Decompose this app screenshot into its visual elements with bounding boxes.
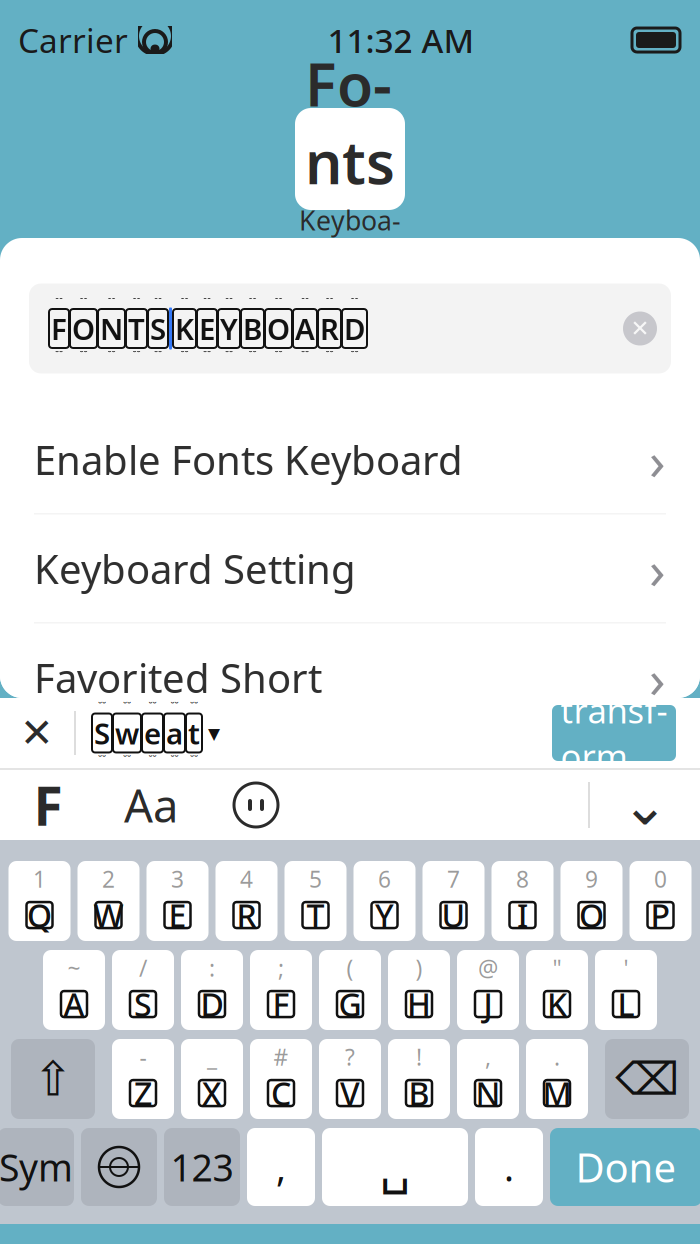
staticText: B <box>408 1072 429 1114</box>
button[interactable]: 6 <box>353 861 415 941</box>
staticText: O <box>579 894 604 936</box>
button[interactable]: # <box>250 1039 312 1119</box>
button[interactable]: 4 <box>215 861 277 941</box>
button[interactable]: Shift <box>11 1039 95 1119</box>
staticText: # <box>273 1042 288 1072</box>
staticText: J <box>483 983 492 1025</box>
staticText: Y <box>375 894 394 936</box>
staticText: D <box>200 983 223 1025</box>
staticText: A <box>63 983 84 1025</box>
staticText: " <box>552 953 561 983</box>
button[interactable]: ; <box>250 950 312 1030</box>
staticText: ( <box>346 953 353 983</box>
staticText: E <box>168 894 186 936</box>
staticText: › <box>649 533 666 604</box>
button[interactable]: - <box>112 1039 174 1119</box>
staticText: ? <box>345 1042 355 1072</box>
button[interactable]: . <box>526 1039 588 1119</box>
button[interactable]: ˘˘ <box>76 698 220 768</box>
staticText: . <box>554 1042 560 1072</box>
staticText: 0 <box>654 864 667 894</box>
staticText: K <box>547 983 567 1025</box>
staticText: w <box>115 713 139 752</box>
button[interactable]: Space <box>322 1128 468 1206</box>
button[interactable]: @ <box>457 950 519 1030</box>
staticText: ) <box>415 953 422 983</box>
staticText: ˘˘ <box>154 295 162 309</box>
button[interactable]: 5 <box>284 861 346 941</box>
staticText: ˘˘ <box>325 295 333 309</box>
button[interactable]: Clear text <box>615 303 665 353</box>
staticText: W <box>93 894 123 936</box>
staticText: ˘˘ <box>350 348 358 362</box>
staticText: V <box>340 1072 360 1114</box>
staticText: ˘˘ <box>79 348 87 362</box>
button[interactable]: Enable Fonts Keyboard <box>0 405 700 513</box>
button[interactable]: _ <box>181 1039 243 1119</box>
button[interactable]: Keyboard Setting <box>0 514 700 622</box>
staticText: ~ <box>67 953 80 983</box>
staticText: _ <box>207 1042 217 1072</box>
staticText: ˘˘ <box>79 295 87 309</box>
button[interactable]: Favorited Short <box>0 623 700 731</box>
staticText: Z <box>134 1072 152 1114</box>
staticText: Q <box>27 894 52 936</box>
staticText: 5 <box>309 864 322 894</box>
button[interactable]: Close <box>0 698 74 768</box>
button[interactable]: " <box>526 950 588 1030</box>
button[interactable]: 8 <box>491 861 553 941</box>
button[interactable]: , <box>247 1128 315 1206</box>
staticText: F <box>51 309 67 348</box>
button[interactable]: : <box>181 950 243 1030</box>
button[interactable]: ! <box>388 1039 450 1119</box>
staticText: ˘˘ <box>123 752 131 767</box>
staticText: Enable Fonts Keyboard <box>34 433 463 486</box>
button[interactable]: ? <box>319 1039 381 1119</box>
button[interactable]: 9 <box>560 861 622 941</box>
button[interactable]: Sym <box>0 1128 74 1206</box>
staticText: H <box>407 983 431 1025</box>
staticText: ˘˘ <box>148 752 156 767</box>
button[interactable]: Next keyboard <box>81 1128 157 1206</box>
staticText: Sym <box>0 1142 73 1192</box>
button[interactable]: , <box>457 1039 519 1119</box>
button[interactable]: transform <box>552 705 676 761</box>
staticText: ˘˘ <box>274 295 282 309</box>
button[interactable]: Hide keyboard <box>590 770 700 840</box>
staticText: ␣ <box>380 1140 410 1194</box>
staticText: ˘˘ <box>55 348 63 362</box>
button[interactable]: 1 <box>8 861 70 941</box>
staticText: ˘˘ <box>301 295 309 309</box>
button[interactable]: 123 <box>164 1128 240 1206</box>
button[interactable]: 2 <box>77 861 139 941</box>
staticText: T <box>128 309 145 348</box>
button[interactable]: ~ <box>43 950 105 1030</box>
button[interactable]: Text styles <box>96 770 206 840</box>
button[interactable]: ' <box>595 950 657 1030</box>
button[interactable]: 0 <box>629 861 691 941</box>
staticText: ; <box>278 953 284 983</box>
staticText: ˘˘ <box>132 295 140 309</box>
button[interactable]: / <box>112 950 174 1030</box>
staticText: ˘˘ <box>55 295 63 309</box>
staticText: . <box>504 1142 514 1192</box>
staticText: S <box>94 713 110 752</box>
button[interactable]: . <box>475 1128 543 1206</box>
staticText: R <box>320 309 339 348</box>
button[interactable]: 7 <box>422 861 484 941</box>
button[interactable]: ) <box>388 950 450 1030</box>
staticText: ˘˘ <box>325 348 333 362</box>
staticText: ✕ <box>630 316 649 341</box>
button[interactable]: ( <box>319 950 381 1030</box>
staticText: 1 <box>33 864 46 894</box>
staticText: ' <box>623 953 628 983</box>
button[interactable]: Fonts <box>0 770 96 840</box>
staticText: Favorited Short <box>34 651 322 704</box>
button[interactable]: Emoji <box>206 770 306 840</box>
button[interactable]: Done <box>550 1128 700 1206</box>
button[interactable]: 3 <box>146 861 208 941</box>
staticText: Keyboard <box>299 202 401 273</box>
staticText: 4 <box>240 864 253 894</box>
staticText: / <box>139 953 147 983</box>
button[interactable]: Delete <box>605 1039 689 1119</box>
